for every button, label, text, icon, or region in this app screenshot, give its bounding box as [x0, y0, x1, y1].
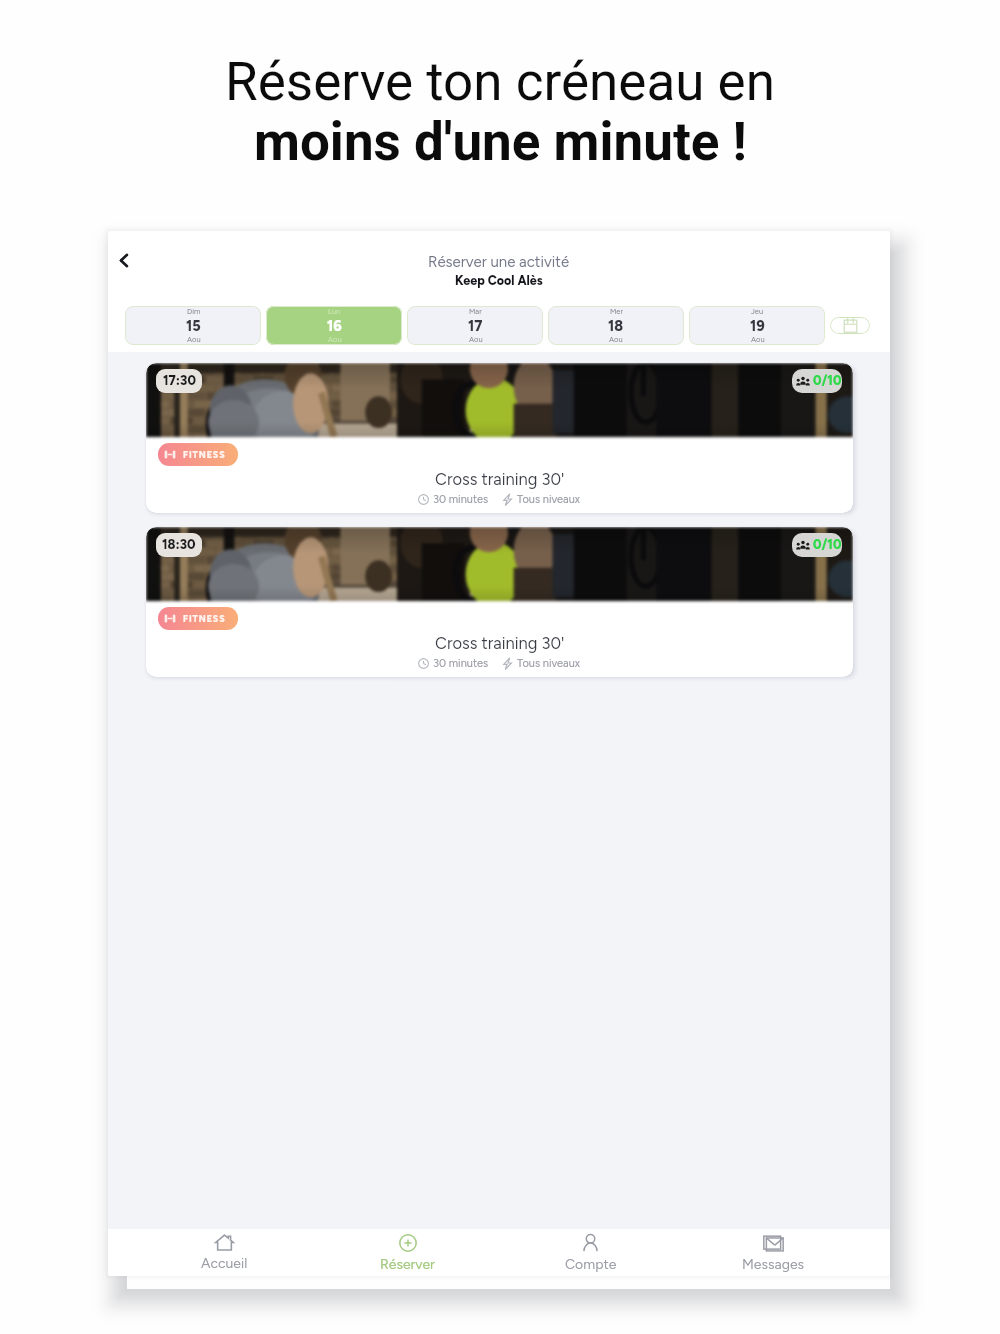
button[interactable]: Compte [499, 1233, 682, 1273]
button[interactable]: Lun [266, 306, 402, 345]
staticText: Aou [751, 335, 765, 344]
staticText: moins d'une minute ! [254, 111, 747, 173]
staticText: Keep Cool Alès [455, 273, 543, 288]
staticText: Réserve ton créneau en [225, 51, 775, 113]
staticText: Mar [469, 307, 482, 316]
staticText: Dim [187, 307, 201, 316]
button[interactable]: Dim [125, 306, 261, 345]
staticText: Messages [742, 1256, 805, 1273]
button[interactable]: 18:30 [146, 527, 853, 677]
staticText: Réserver une activité [428, 253, 570, 271]
staticText: Cross training 30' [435, 469, 565, 489]
staticText: Lun [328, 307, 341, 316]
staticText: 17:30 [163, 373, 196, 389]
staticText: Réserver [380, 1256, 435, 1273]
staticText: 30 minutes [433, 657, 489, 670]
button[interactable]: Calendar [830, 317, 870, 334]
staticText: 19 [750, 317, 765, 334]
button[interactable]: Jeu [689, 306, 825, 345]
staticText: 17 [468, 317, 483, 334]
staticText: Aou [609, 335, 623, 344]
staticText: FITNESS [183, 613, 226, 624]
staticText: Tous niveaux [517, 493, 581, 506]
staticText: Cross training 30' [435, 633, 565, 653]
staticText: Accueil [201, 1255, 248, 1272]
button[interactable]: Messages [682, 1233, 865, 1273]
staticText: FITNESS [183, 449, 226, 460]
button[interactable]: Réserver [316, 1233, 499, 1273]
staticText: Tous niveaux [517, 657, 581, 670]
staticText: 15 [186, 317, 201, 334]
staticText: 0/10 [813, 537, 842, 553]
staticText: 16 [327, 317, 342, 334]
staticText: 18 [608, 317, 624, 334]
staticText: Aou [469, 335, 483, 344]
staticText: 0/10 [813, 373, 842, 389]
button[interactable]: Accueil [133, 1233, 316, 1272]
staticText: 30 minutes [433, 493, 489, 506]
staticText: Mer [610, 307, 623, 316]
button[interactable]: Back [108, 244, 140, 276]
staticText: 18:30 [162, 537, 196, 553]
staticText: Aou [328, 335, 342, 344]
button[interactable]: Mer [548, 306, 684, 345]
staticText: Aou [187, 335, 201, 344]
staticText: Jeu [751, 307, 764, 316]
staticText: Compte [565, 1256, 617, 1273]
button[interactable]: 17:30 [146, 363, 853, 513]
button[interactable]: Mar [407, 306, 543, 345]
